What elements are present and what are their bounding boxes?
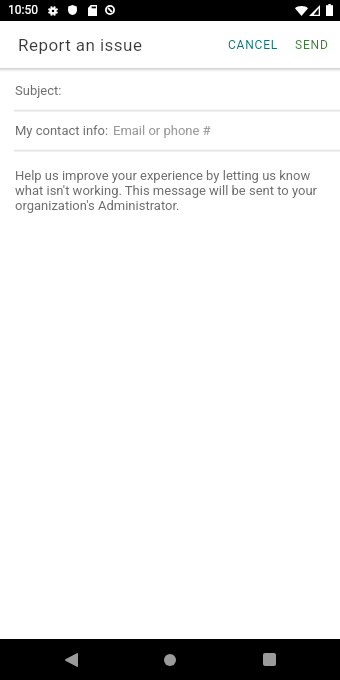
button[interactable]: SEND bbox=[287, 30, 337, 60]
staticText: Help us improve your experience by letti… bbox=[15, 168, 322, 213]
staticText: CANCEL bbox=[228, 38, 279, 52]
staticText: Email or phone # bbox=[113, 123, 211, 138]
staticText: 10:50 bbox=[8, 3, 38, 17]
staticText: Report an issue bbox=[18, 35, 143, 55]
staticText: SEND bbox=[295, 38, 329, 52]
staticText: My contact info: bbox=[15, 123, 109, 138]
button[interactable]: CANCEL bbox=[220, 30, 287, 60]
staticText: Subject: bbox=[15, 83, 62, 98]
button[interactable]: Back bbox=[43, 639, 99, 680]
button[interactable]: Recent apps bbox=[241, 639, 297, 680]
button[interactable]: Home bbox=[142, 639, 198, 680]
